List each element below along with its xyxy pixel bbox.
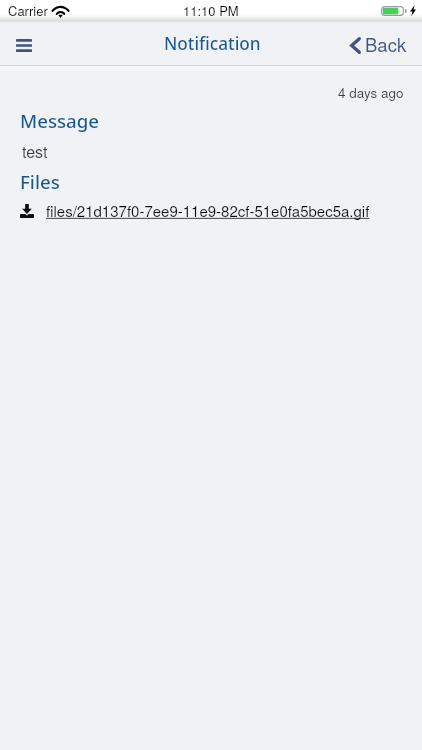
staticText: 11:10 PM (183, 1, 239, 20)
button[interactable]: Menu (10, 32, 38, 59)
staticText: files/21d137f0-7ee9-11e9-82cf-51e0fa5bec… (46, 200, 370, 221)
staticText: Back (365, 31, 407, 57)
staticText: Message (20, 108, 100, 133)
staticText: test (22, 140, 48, 163)
staticText: Notification (164, 32, 261, 55)
staticText: 4 days ago (338, 83, 404, 102)
button[interactable]: files/21d137f0-7ee9-11e9-82cf-51e0fa5bec… (20, 198, 370, 222)
staticText: Files (20, 169, 60, 194)
button[interactable]: Back (350, 32, 407, 58)
staticText: Carrier (8, 1, 48, 20)
